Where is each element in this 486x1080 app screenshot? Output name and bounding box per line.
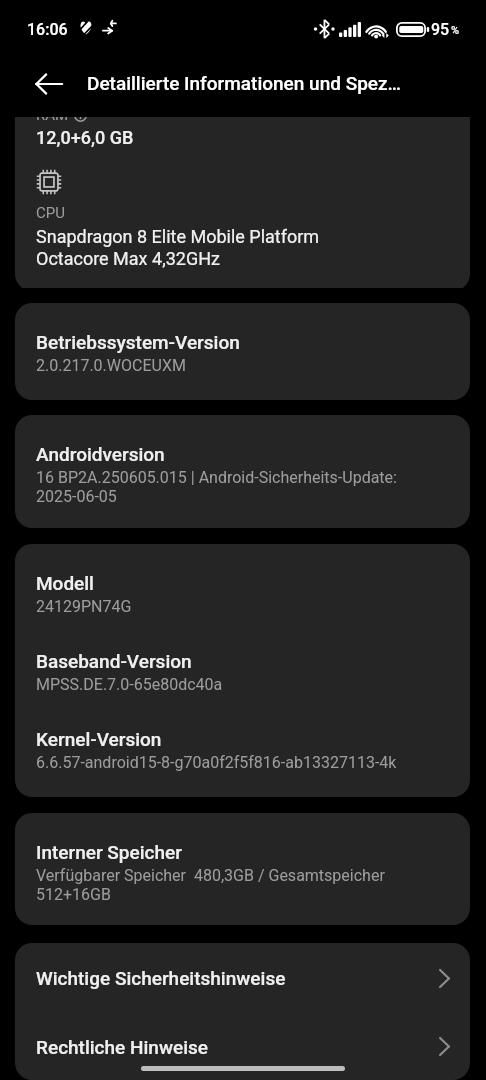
staticText: Interner Speicher [36, 841, 182, 863]
staticText: 512+16GB [36, 885, 111, 904]
staticText: Rechtliche Hinweise [36, 1036, 439, 1058]
button[interactable]: Modell [15, 544, 470, 797]
staticText: 16:06 [27, 20, 68, 39]
button[interactable]: Interner Speicher [15, 813, 470, 925]
staticText: Androidversion [36, 443, 165, 465]
button[interactable]: Back [24, 59, 74, 109]
staticText: Wichtige Sicherheitshinweise [36, 967, 439, 989]
staticText: Betriebssystem-Version [36, 331, 240, 353]
staticText: 24129PN74G [36, 597, 132, 616]
button[interactable]: Betriebssystem-Version [15, 303, 470, 400]
staticText: 6.6.57-android15-8-g70a0f2f5f816-ab13327… [36, 753, 397, 772]
button[interactable]: Rechtliche Hinweise [15, 1013, 470, 1080]
staticText: % [451, 24, 460, 37]
staticText: Snapdragon 8 Elite Mobile Platform Octac… [36, 226, 320, 270]
staticText: 2.0.217.0.WOCEUXM [36, 356, 186, 375]
staticText: Modell [36, 572, 94, 594]
staticText: Baseband-Version [36, 650, 192, 672]
staticText: 12,0+6,0 GB [36, 127, 134, 148]
staticText: 95 [431, 20, 450, 39]
staticText: Kernel-Version [36, 728, 162, 750]
staticText: Detaillierte Informationen und Spez… [87, 72, 402, 94]
staticText: CPU [36, 204, 65, 222]
staticText: MPSS.DE.7.0-65e80dc40a [36, 675, 223, 694]
button[interactable]: Wichtige Sicherheitshinweise [15, 943, 470, 1013]
button[interactable]: RAM information [74, 117, 87, 122]
staticText: Verfügbarer Speicher 480,3GB / Gesamtspe… [36, 866, 385, 885]
staticText: 2025-06-05 [36, 487, 117, 506]
button[interactable]: Androidversion [15, 415, 470, 528]
staticText: RAM [36, 117, 69, 124]
staticText: 16 BP2A.250605.015 | Android-Sicherheits… [36, 468, 397, 487]
